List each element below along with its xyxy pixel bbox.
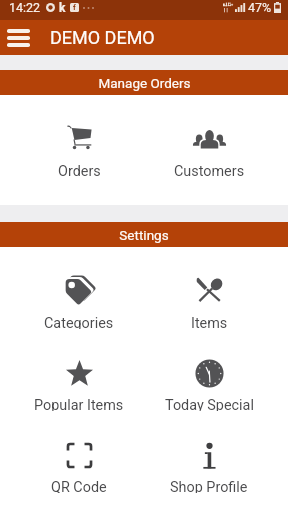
staticText: f	[73, 3, 76, 12]
staticText: DEMO DEMO	[50, 27, 155, 48]
staticText: QR Code	[51, 479, 107, 493]
staticText: 47%	[248, 0, 272, 15]
staticText: Popular Items	[34, 397, 124, 411]
staticText: 14:22	[9, 0, 41, 15]
staticText: Items	[191, 315, 228, 329]
button[interactable]: Orders	[14, 95, 144, 205]
staticText: Today Special	[165, 397, 254, 411]
button[interactable]: Today Special	[144, 329, 274, 411]
staticText: Customers	[174, 163, 245, 180]
button[interactable]: Categories	[14, 247, 144, 329]
staticText: k	[59, 1, 66, 15]
staticText: Settings	[119, 227, 169, 243]
button[interactable]: Popular Items	[14, 329, 144, 411]
button[interactable]: Open navigation menu	[7, 29, 30, 47]
staticText: Manage Orders	[98, 75, 191, 91]
button[interactable]: Items	[144, 247, 274, 329]
button[interactable]: QR Code	[14, 411, 144, 493]
staticText: Shop Profile	[170, 479, 248, 493]
staticText: Orders	[58, 163, 101, 180]
staticText: Categories	[44, 315, 114, 329]
button[interactable]: Customers	[144, 95, 274, 205]
button[interactable]: Shop Profile	[144, 411, 274, 493]
